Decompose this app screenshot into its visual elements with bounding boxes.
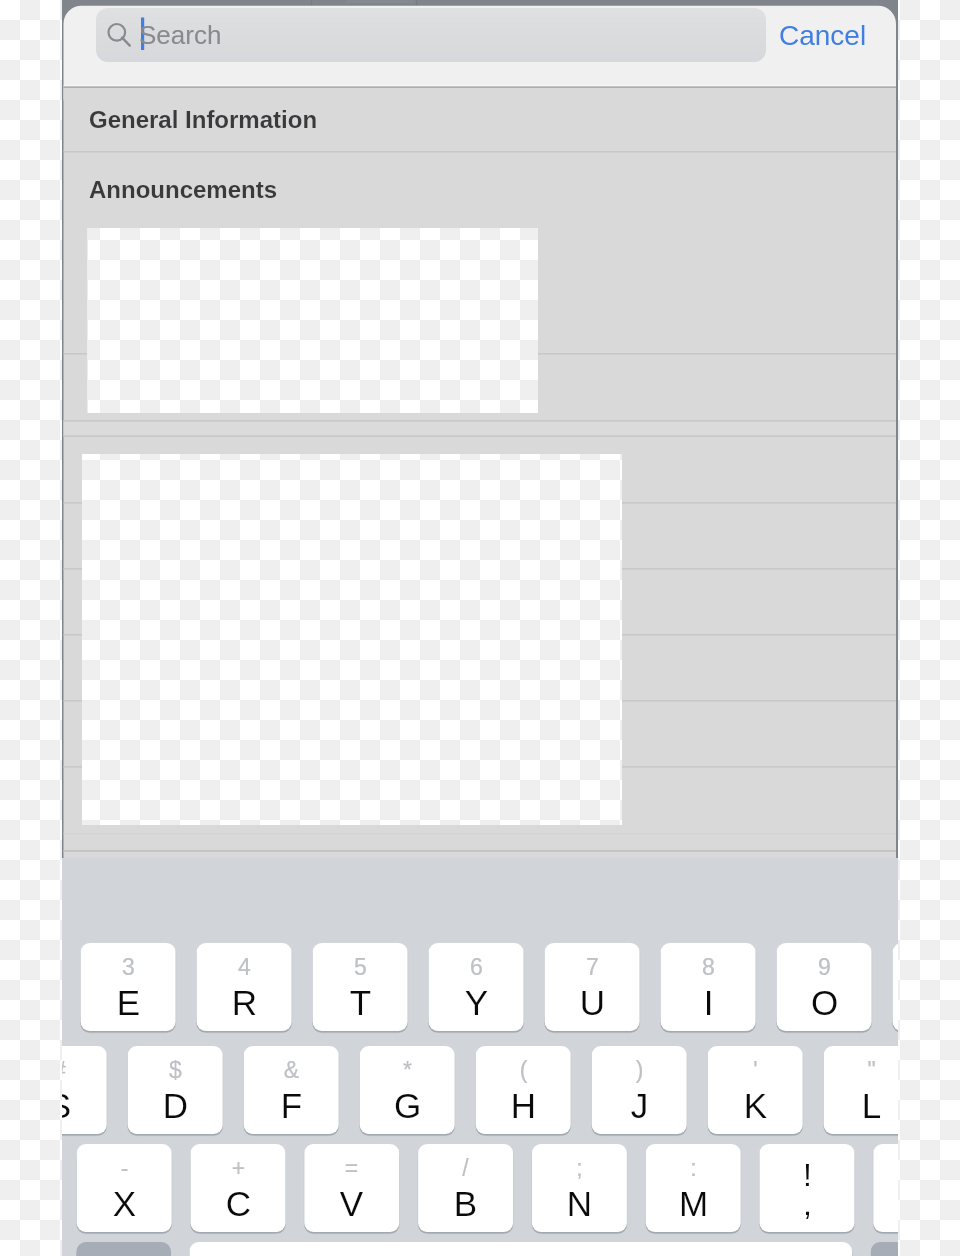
button[interactable]: Cancel bbox=[772, 8, 874, 62]
staticText: General Information bbox=[89, 106, 318, 133]
staticText: ( bbox=[476, 1057, 571, 1087]
button[interactable]: O key bbox=[777, 943, 872, 1031]
staticText: S bbox=[62, 1086, 107, 1130]
staticText: Announcements bbox=[89, 176, 278, 203]
staticText: C bbox=[191, 1184, 286, 1228]
staticText: D bbox=[128, 1086, 223, 1130]
staticText: : bbox=[646, 1155, 741, 1185]
button[interactable]: U key bbox=[545, 943, 640, 1031]
staticText: 3 bbox=[81, 954, 176, 984]
button[interactable]: F key bbox=[244, 1046, 339, 1134]
staticText: # bbox=[62, 1057, 107, 1087]
staticText: 4 bbox=[197, 954, 292, 984]
button[interactable]: General Information bbox=[64, 88, 897, 151]
button[interactable]: E key bbox=[81, 943, 176, 1031]
button[interactable]: L key bbox=[824, 1046, 898, 1134]
button[interactable]: R key bbox=[197, 943, 292, 1031]
staticText: 9 bbox=[777, 954, 872, 984]
button[interactable]: P key bbox=[893, 943, 898, 1031]
button[interactable]: Search bbox=[96, 8, 766, 62]
button[interactable]: S key bbox=[62, 1046, 107, 1134]
staticText: L bbox=[824, 1086, 898, 1130]
button[interactable]: Exclamation and comma key bbox=[760, 1144, 855, 1232]
staticText: 6 bbox=[429, 954, 524, 984]
staticText: O bbox=[777, 983, 872, 1027]
button[interactable]: D key bbox=[128, 1046, 223, 1134]
button[interactable]: Announcements bbox=[64, 155, 897, 224]
button[interactable]: V key bbox=[304, 1144, 399, 1232]
staticText: & bbox=[244, 1057, 339, 1087]
button[interactable]: X key bbox=[77, 1144, 172, 1232]
staticText: E bbox=[81, 983, 176, 1027]
button[interactable]: C key bbox=[191, 1144, 286, 1232]
staticText: - bbox=[77, 1155, 172, 1185]
staticText: ) bbox=[592, 1057, 687, 1087]
button[interactable]: T key bbox=[313, 943, 408, 1031]
staticText: , bbox=[760, 1186, 855, 1226]
button[interactable]: G key bbox=[360, 1046, 455, 1134]
staticText: ' bbox=[708, 1057, 803, 1087]
button[interactable]: B key bbox=[418, 1144, 513, 1232]
button[interactable]: M key bbox=[646, 1144, 741, 1232]
button[interactable]: J key bbox=[592, 1046, 687, 1134]
staticText: M bbox=[646, 1184, 741, 1228]
staticText: + bbox=[191, 1155, 286, 1185]
button[interactable]: Y key bbox=[429, 943, 524, 1031]
staticText: $ bbox=[128, 1057, 223, 1087]
staticText: = bbox=[304, 1155, 399, 1185]
staticText: X bbox=[77, 1184, 172, 1228]
staticText: ! bbox=[760, 1157, 855, 1197]
staticText: 8 bbox=[661, 954, 756, 984]
staticText: J bbox=[592, 1086, 687, 1130]
button[interactable]: N key bbox=[532, 1144, 627, 1232]
staticText: Search bbox=[139, 20, 222, 49]
button[interactable]: H key bbox=[476, 1046, 571, 1134]
staticText: I bbox=[661, 983, 756, 1027]
staticText: P bbox=[893, 983, 898, 1027]
staticText: " bbox=[824, 1057, 898, 1087]
staticText: G bbox=[360, 1086, 455, 1130]
staticText: R bbox=[197, 983, 292, 1027]
staticText: ; bbox=[532, 1155, 627, 1185]
staticText: 7 bbox=[545, 954, 640, 984]
staticText: V bbox=[304, 1184, 399, 1228]
staticText: H bbox=[476, 1086, 571, 1130]
staticText: 5 bbox=[313, 954, 408, 984]
staticText: K bbox=[708, 1086, 803, 1130]
staticText: U bbox=[545, 983, 640, 1027]
staticText: / bbox=[418, 1155, 513, 1185]
staticText: Y bbox=[429, 983, 524, 1027]
staticText: N bbox=[532, 1184, 627, 1228]
staticText: * bbox=[360, 1057, 455, 1087]
staticText: T bbox=[313, 983, 408, 1027]
staticText: Cancel bbox=[779, 20, 867, 51]
button[interactable]: K key bbox=[708, 1046, 803, 1134]
staticText: B bbox=[418, 1184, 513, 1228]
button[interactable]: I key bbox=[661, 943, 756, 1031]
staticText: F bbox=[244, 1086, 339, 1130]
